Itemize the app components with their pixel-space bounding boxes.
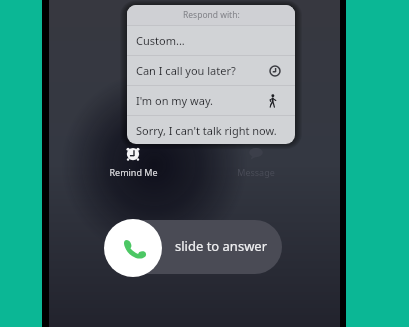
button[interactable]: Remind Me: [108, 145, 158, 178]
button[interactable]: I'm on my way.: [127, 86, 295, 115]
button[interactable]: Can I call you later?: [127, 56, 295, 85]
button[interactable]: Answer call: [104, 219, 162, 277]
staticText: slide to answer: [175, 237, 268, 255]
button[interactable]: Custom...: [127, 26, 295, 55]
staticText: Sorry, I can't talk right now.: [136, 123, 277, 138]
button[interactable]: Sorry, I can't talk right now.: [127, 116, 295, 144]
staticText: I'm on my way.: [136, 93, 214, 108]
staticText: Respond with:: [183, 9, 240, 21]
staticText: Remind Me: [109, 166, 158, 178]
button[interactable]: Message: [231, 145, 281, 178]
button[interactable]: slide to answer: [107, 220, 282, 274]
staticText: Can I call you later?: [136, 63, 236, 78]
staticText: Custom...: [136, 33, 185, 48]
staticText: Message: [237, 166, 275, 178]
